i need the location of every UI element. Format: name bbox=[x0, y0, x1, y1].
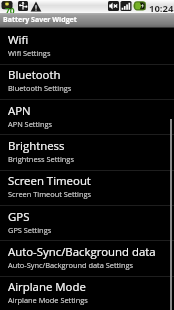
staticText: Wifi bbox=[8, 32, 29, 48]
button[interactable]: APN bbox=[0, 99, 174, 134]
staticText: Wifi Settings bbox=[8, 48, 51, 58]
staticText: Auto-Sync/Background data Settings bbox=[8, 260, 134, 270]
staticText: Brightness bbox=[8, 138, 65, 154]
button[interactable]: Brightness bbox=[0, 134, 174, 169]
staticText: 70 bbox=[5, 5, 15, 17]
staticText: Screen Timeout Settings bbox=[8, 189, 92, 199]
staticText: Bluetooth bbox=[8, 67, 61, 83]
button[interactable]: GPS bbox=[0, 205, 174, 240]
staticText: APN bbox=[8, 103, 31, 119]
staticText: 10:24 bbox=[149, 2, 174, 15]
button[interactable]: Auto-Sync/Background data bbox=[0, 240, 174, 275]
staticText: Screen Timeout bbox=[8, 173, 91, 189]
staticText: Auto-Sync/Background data bbox=[8, 244, 156, 260]
button[interactable]: Screen Timeout bbox=[0, 169, 174, 204]
staticText: Bluetooth Settings bbox=[8, 83, 72, 93]
staticText: Battery Saver Widget bbox=[3, 15, 77, 25]
staticText: Airplane Mode bbox=[8, 279, 86, 295]
staticText: APN Settings bbox=[8, 119, 53, 129]
staticText: Airplane Mode Settings bbox=[8, 295, 88, 305]
button[interactable]: Airplane Mode bbox=[0, 275, 174, 310]
button[interactable]: Wifi bbox=[0, 28, 174, 63]
button[interactable]: Bluetooth bbox=[0, 63, 174, 98]
staticText: GPS bbox=[8, 209, 30, 225]
staticText: Brightness Settings bbox=[8, 154, 74, 164]
staticText: GPS Settings bbox=[8, 225, 52, 235]
